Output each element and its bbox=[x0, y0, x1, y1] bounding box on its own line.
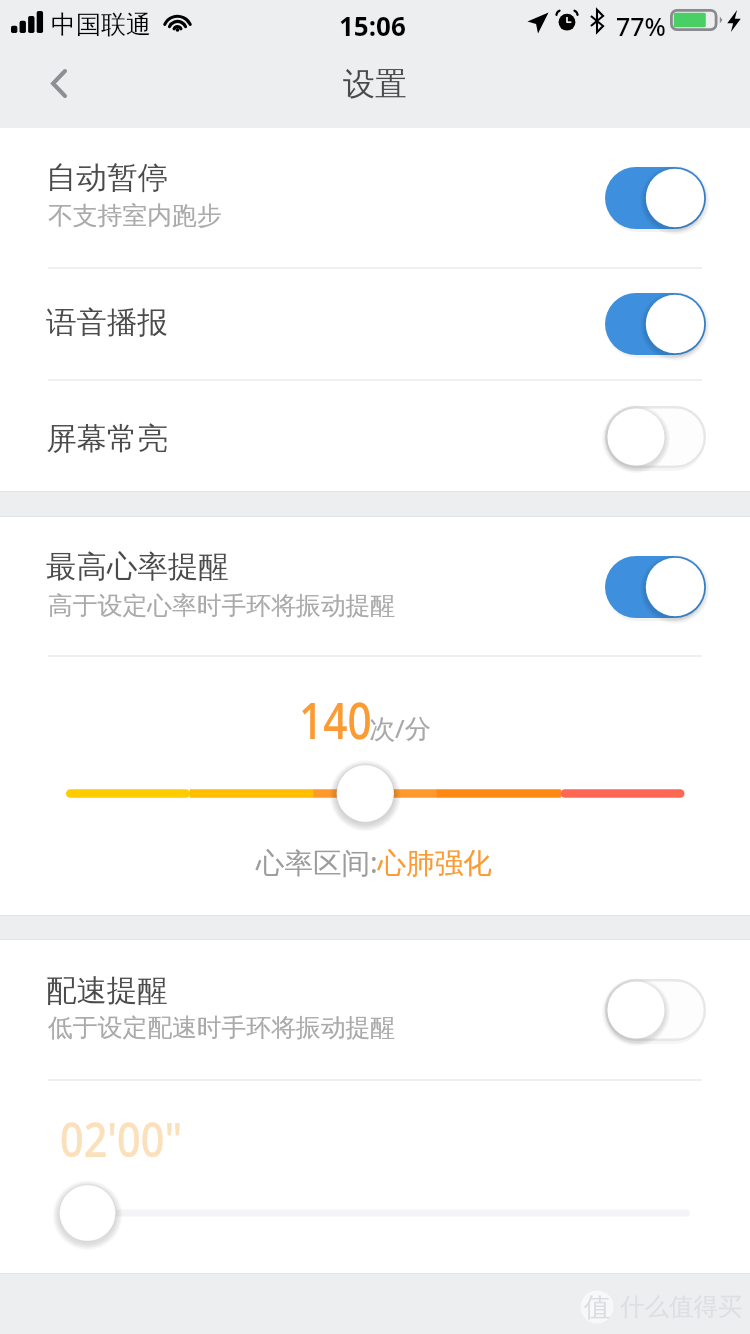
staticText: 设置 bbox=[343, 64, 407, 104]
button[interactable]: 语音播报 bbox=[0, 268, 750, 379]
button[interactable]: Switch on bbox=[605, 293, 706, 355]
staticText: 中国联通 bbox=[51, 9, 151, 40]
button[interactable]: Switch off bbox=[605, 979, 706, 1041]
staticText: 02'00" bbox=[60, 1106, 182, 1171]
staticText: 不支持室内跑步 bbox=[48, 200, 222, 231]
staticText: 自动暂停 bbox=[46, 159, 168, 197]
staticText: 语音播报 bbox=[46, 304, 168, 342]
staticText: 心率区间:心肺强化 bbox=[256, 843, 492, 882]
button[interactable]: 自动暂停 bbox=[0, 128, 750, 267]
staticText: 低于设定配速时手环将振动提醒 bbox=[48, 1012, 396, 1043]
staticText: 140 bbox=[299, 686, 372, 754]
button[interactable]: 配速提醒 bbox=[0, 939, 750, 1079]
staticText: 配速提醒 bbox=[46, 972, 168, 1010]
staticText: 高于设定心率时手环将振动提醒 bbox=[48, 590, 396, 621]
staticText: 值 bbox=[584, 1291, 610, 1324]
staticText: 次/分 bbox=[369, 710, 431, 746]
button[interactable]: 最高心率提醒 bbox=[0, 516, 750, 655]
staticText: 什么值得买 bbox=[620, 1291, 743, 1322]
staticText: 屏幕常亮 bbox=[46, 420, 168, 458]
button[interactable]: Switch off bbox=[605, 406, 706, 468]
button[interactable]: Switch on bbox=[605, 167, 706, 229]
button[interactable]: 屏幕常亮 bbox=[0, 380, 750, 492]
staticText: 15:06 bbox=[339, 8, 406, 43]
button[interactable]: Switch on bbox=[605, 556, 706, 618]
button[interactable]: Back bbox=[0, 48, 100, 128]
staticText: 77% bbox=[616, 9, 666, 43]
staticText: 最高心率提醒 bbox=[46, 548, 229, 586]
